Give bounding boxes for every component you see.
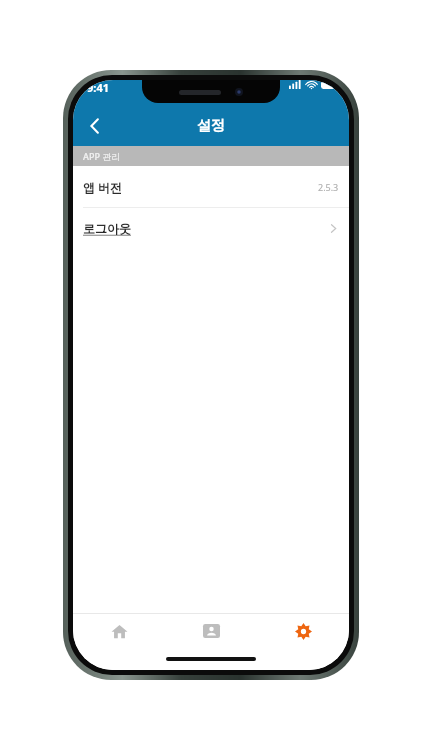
button[interactable]: Settings [257, 614, 349, 648]
staticText: 앱 버전 [83, 179, 123, 195]
staticText: 로그아웃 [83, 221, 131, 236]
button[interactable]: Profile [165, 614, 257, 648]
staticText: 9:41 [87, 80, 109, 95]
staticText: 설정 [197, 117, 225, 135]
button[interactable]: Back [73, 106, 117, 146]
button[interactable]: Home [73, 614, 165, 648]
staticText: 2.5.3 [318, 181, 339, 193]
button[interactable]: 로그아웃 [73, 208, 349, 249]
button[interactable]: 앱 버전 [73, 166, 349, 207]
staticText: APP 관리 [83, 150, 121, 162]
